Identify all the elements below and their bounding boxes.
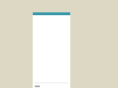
button[interactable]: Top app bar [33,12,70,15]
button[interactable]: List item [33,81,70,88]
